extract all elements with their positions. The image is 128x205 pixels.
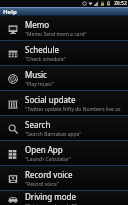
button[interactable]: Memo <box>0 16 128 40</box>
button[interactable]: Search <box>0 116 128 140</box>
button[interactable]: Social update <box>0 91 128 115</box>
staticText: Search <box>25 119 51 130</box>
staticText: Help <box>3 8 17 16</box>
staticText: "Check schedule" <box>25 56 66 63</box>
button[interactable]: Music <box>0 66 128 90</box>
staticText: Open App <box>25 144 63 155</box>
staticText: "Play music" <box>25 81 55 88</box>
staticText: Music <box>25 69 47 80</box>
staticText: "Launch Calculator" <box>25 156 72 163</box>
staticText: Driving mode <box>25 191 77 202</box>
staticText: "Search Barnabas apps" <box>25 131 82 138</box>
button[interactable]: Record voice <box>0 166 128 190</box>
staticText: "Twitter update Nifty do Numbers live so… <box>25 106 124 113</box>
staticText: "Record voice" <box>25 181 59 188</box>
staticText: Record voice <box>25 169 73 180</box>
staticText: Memo <box>25 19 50 30</box>
button[interactable]: Driving mode <box>0 191 128 205</box>
staticText: "Driving mode on/off" <box>25 203 78 205</box>
staticText: "Memo Send mom a card" <box>25 31 87 38</box>
staticText: 20:52 <box>114 0 127 7</box>
staticText: Schedule <box>25 44 60 55</box>
button[interactable]: Schedule <box>0 41 128 65</box>
staticText: Social update <box>25 94 76 105</box>
button[interactable]: Open App <box>0 141 128 165</box>
